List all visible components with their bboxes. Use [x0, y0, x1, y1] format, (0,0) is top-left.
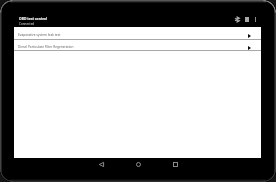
staticText: OBD test control [19, 16, 47, 21]
button[interactable]: Bluetooth connected [233, 15, 242, 24]
button[interactable]: Diesel Particulate Filter Regeneration [14, 40, 261, 51]
staticText: Diesel Particulate Filter Regeneration [18, 45, 248, 49]
button[interactable]: More options [251, 15, 260, 24]
button[interactable]: Evaporative system leak test [14, 27, 261, 40]
button[interactable]: Back [95, 158, 107, 170]
staticText: Evaporative system leak test [18, 33, 248, 37]
button[interactable]: Home [132, 158, 144, 170]
button[interactable]: Recent apps [169, 158, 181, 170]
staticText: Connected [19, 22, 35, 26]
button[interactable]: Battery [242, 15, 251, 24]
